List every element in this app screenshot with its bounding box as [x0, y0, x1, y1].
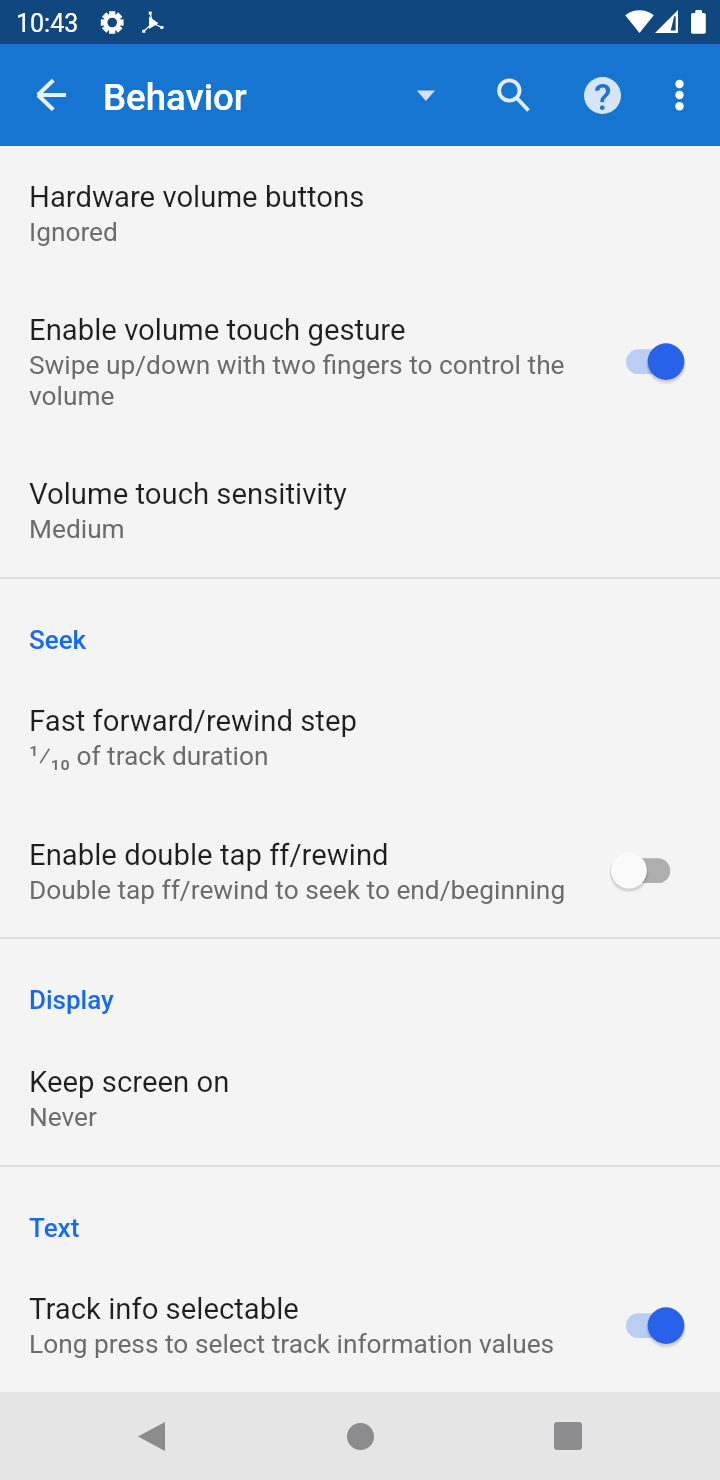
- staticText: Text: [29, 1213, 80, 1243]
- staticText: 10:43: [16, 9, 79, 38]
- button[interactable]: Search: [479, 65, 539, 125]
- staticText: Enable double tap ff/rewind: [29, 838, 389, 872]
- staticText: Swipe up/down with two fingers to contro…: [29, 350, 591, 412]
- staticText: Behavior: [103, 76, 247, 119]
- staticText: ¹⁄₁₀ of track duration: [29, 741, 269, 772]
- staticText: Track info selectable: [29, 1292, 299, 1326]
- button[interactable]: [0, 280, 720, 444]
- staticText: Long press to select track information v…: [29, 1329, 555, 1360]
- button[interactable]: Home: [329, 1405, 391, 1467]
- staticText: Keep screen on: [29, 1065, 230, 1099]
- staticText: Ignored: [29, 217, 118, 248]
- button[interactable]: [0, 805, 720, 937]
- button[interactable]: Expand: [396, 65, 456, 125]
- staticText: Enable volume touch gesture: [29, 313, 406, 347]
- staticText: Seek: [29, 625, 87, 655]
- button[interactable]: Navigate up: [14, 58, 88, 132]
- staticText: Medium: [29, 514, 125, 545]
- button[interactable]: Help: [572, 65, 632, 125]
- staticText: ?: [594, 77, 612, 114]
- staticText: Volume touch sensitivity: [29, 477, 347, 511]
- staticText: Double tap ff/rewind to seek to end/begi…: [29, 875, 566, 906]
- staticText: Display: [29, 985, 114, 1015]
- staticText: Never: [29, 1102, 97, 1133]
- button[interactable]: [0, 679, 720, 805]
- button[interactable]: [0, 444, 720, 577]
- button[interactable]: [0, 146, 720, 280]
- button[interactable]: Recent apps: [537, 1405, 599, 1467]
- staticText: Hardware volume buttons: [29, 180, 365, 214]
- button[interactable]: More options: [649, 65, 709, 125]
- button[interactable]: [0, 1040, 720, 1165]
- button[interactable]: [0, 1267, 720, 1392]
- button[interactable]: Back: [120, 1405, 182, 1467]
- staticText: Fast forward/rewind step: [29, 704, 357, 738]
